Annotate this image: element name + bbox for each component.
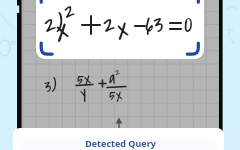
staticText: Detected Query <box>22 137 217 149</box>
staticText: x <box>117 9 129 47</box>
staticText: 2 <box>103 7 116 42</box>
staticText: 2 <box>64 0 75 27</box>
staticText: a <box>109 68 116 90</box>
staticText: 63 <box>145 7 164 42</box>
staticText: y <box>80 80 87 104</box>
button[interactable]: Detected Query <box>13 128 224 150</box>
staticText: x <box>56 8 70 50</box>
staticText: 0 <box>184 7 193 42</box>
staticText: 3) <box>44 74 57 100</box>
staticText: 2 <box>115 64 121 79</box>
staticText: 5x <box>109 84 123 106</box>
staticText: 2) <box>44 7 63 42</box>
staticText: 5x <box>77 67 92 90</box>
button[interactable] <box>36 0 204 59</box>
